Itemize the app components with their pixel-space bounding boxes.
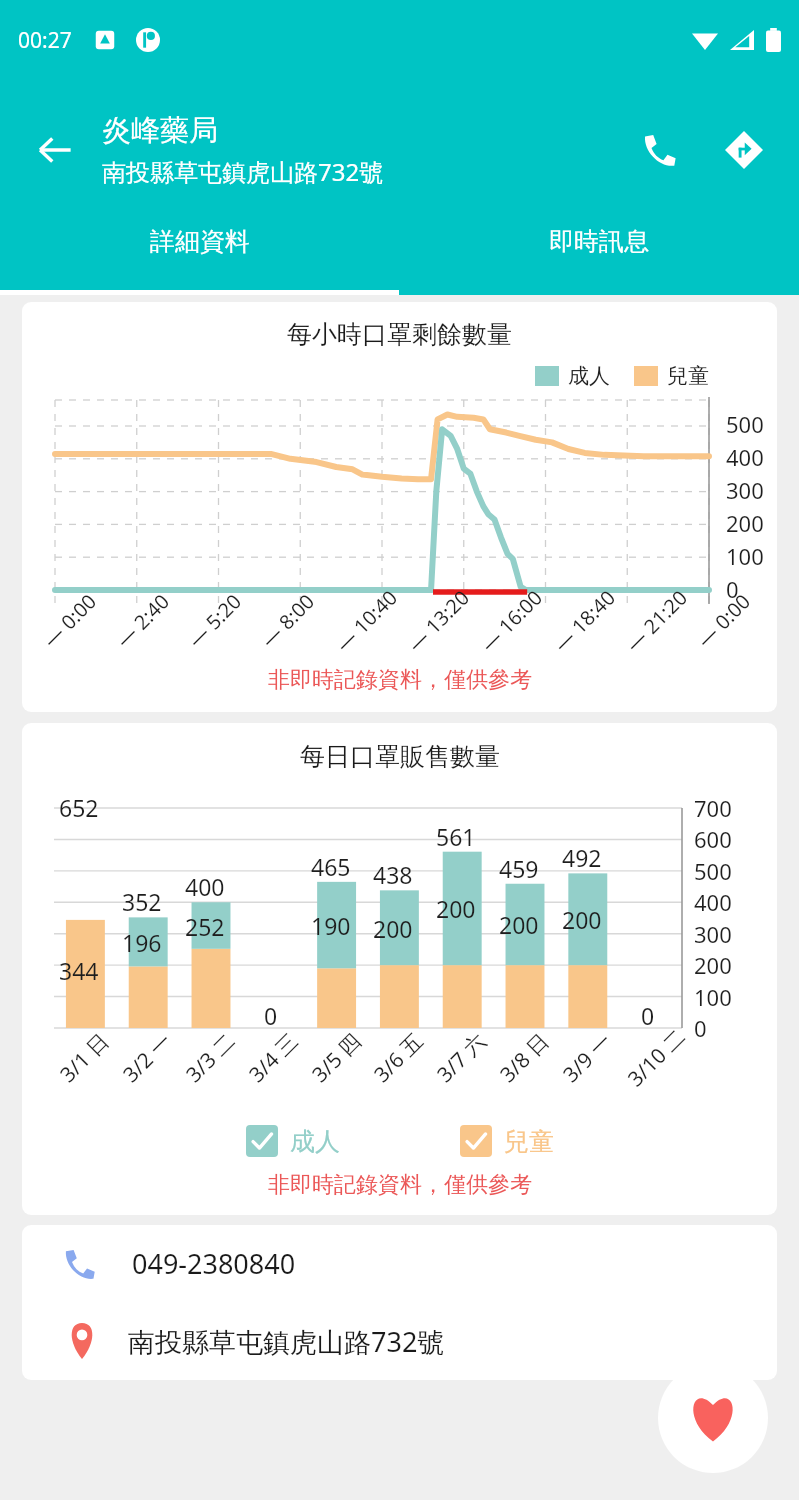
staticText: 0 (694, 1013, 707, 1043)
staticText: — 10:40 (330, 584, 403, 657)
staticText: 成人 (568, 363, 610, 389)
staticText: — 2:40 (110, 588, 175, 653)
button[interactable]: 詳細資料 (0, 210, 399, 295)
staticText: 200 (694, 950, 732, 980)
staticText: 3/3 二 (179, 1026, 242, 1089)
staticText: 352 (122, 886, 162, 917)
button[interactable]: Call (627, 117, 693, 183)
staticText: 3/2 一 (116, 1026, 179, 1089)
staticText: 300 (694, 919, 732, 949)
staticText: — 18:40 (548, 584, 621, 657)
staticText: 300 (726, 475, 764, 505)
staticText: 3/5 四 (305, 1026, 368, 1089)
staticText: 700 (694, 793, 732, 823)
staticText: 兒童 (667, 363, 709, 389)
staticText: 344 (59, 955, 99, 986)
staticText: 652 (59, 792, 99, 823)
staticText: 200 (499, 909, 539, 940)
staticText: 561 (436, 821, 476, 852)
staticText: 每日口罩販售數量 (300, 741, 500, 772)
button[interactable]: 即時訊息 (399, 210, 799, 295)
staticText: 3/10 二 (621, 1022, 692, 1093)
staticText: — 0:00 (37, 588, 102, 653)
staticText: 049-2380840 (132, 1245, 296, 1282)
staticText: 100 (726, 541, 764, 571)
staticText: 南投縣草屯鎮虎山路732號 (102, 155, 384, 188)
staticText: 190 (311, 910, 351, 941)
button[interactable]: Directions (711, 117, 777, 183)
staticText: 100 (694, 982, 732, 1012)
staticText: 3/9 一 (556, 1026, 619, 1089)
staticText: 438 (373, 859, 413, 890)
staticText: 600 (694, 824, 732, 854)
staticText: 成人 (290, 1126, 340, 1157)
staticText: 3/4 三 (242, 1026, 305, 1089)
staticText: 南投縣草屯鎮虎山路732號 (128, 1323, 445, 1360)
staticText: 00:27 (18, 26, 72, 55)
staticText: 炎峰藥局 (102, 112, 218, 149)
staticText: — 21:20 (620, 584, 693, 657)
staticText: 3/1 日 (53, 1026, 116, 1089)
staticText: 詳細資料 (150, 226, 250, 257)
staticText: — 5:20 (182, 588, 247, 653)
staticText: 200 (726, 508, 764, 538)
staticText: — 0:00 (691, 588, 756, 653)
staticText: 3/7 六 (430, 1026, 493, 1089)
staticText: 465 (311, 851, 351, 882)
staticText: 非即時記錄資料，僅供參考 (268, 666, 532, 694)
staticText: 200 (373, 913, 413, 944)
staticText: 兒童 (504, 1126, 554, 1157)
staticText: 0 (726, 574, 739, 604)
button[interactable]: 049-2380840 (22, 1225, 777, 1302)
staticText: 459 (499, 853, 539, 884)
staticText: — 16:00 (475, 584, 548, 657)
staticText: 400 (185, 871, 225, 902)
button[interactable]: 成人 (246, 1125, 340, 1157)
staticText: 400 (694, 887, 732, 917)
staticText: 500 (694, 856, 732, 886)
button[interactable]: Favourite (658, 1363, 768, 1473)
staticText: 200 (436, 893, 476, 924)
staticText: 492 (562, 842, 602, 873)
staticText: 即時訊息 (549, 226, 649, 257)
button[interactable]: 南投縣草屯鎮虎山路732號 (22, 1302, 777, 1380)
button[interactable]: 兒童 (460, 1125, 554, 1157)
button[interactable]: Back (22, 117, 88, 183)
staticText: 500 (726, 409, 764, 439)
staticText: 0 (641, 1000, 655, 1031)
staticText: 400 (726, 442, 764, 472)
staticText: 0 (264, 1000, 278, 1031)
staticText: 非即時記錄資料，僅供參考 (268, 1171, 532, 1199)
staticText: 每小時口罩剩餘數量 (287, 319, 512, 350)
staticText: 3/6 五 (367, 1026, 430, 1089)
staticText: — 13:20 (402, 584, 475, 657)
staticText: 196 (122, 927, 162, 958)
staticText: 252 (185, 911, 225, 942)
staticText: 200 (562, 904, 602, 935)
staticText: — 8:00 (255, 588, 320, 653)
staticText: 3/8 日 (493, 1026, 556, 1089)
